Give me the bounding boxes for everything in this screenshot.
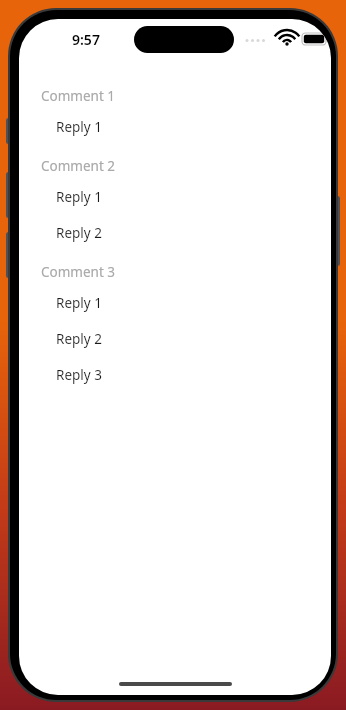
staticText: Reply 2 <box>56 330 102 348</box>
button[interactable]: Reply 1 <box>19 179 331 215</box>
staticText: Reply 1 <box>56 188 102 206</box>
button[interactable]: Comment 2 <box>19 153 331 179</box>
staticText: Comment 1 <box>41 87 116 105</box>
staticText: Reply 2 <box>56 224 102 242</box>
button[interactable]: Comment 3 <box>19 259 331 285</box>
button[interactable]: Reply 1 <box>19 285 331 321</box>
button[interactable]: Reply 1 <box>19 109 331 145</box>
button[interactable]: Comment 1 <box>19 83 331 109</box>
staticText: Reply 3 <box>56 366 102 384</box>
button[interactable]: Reply 2 <box>19 321 331 357</box>
staticText: Reply 1 <box>56 294 102 312</box>
staticText: Comment 3 <box>41 263 116 281</box>
staticText: Reply 1 <box>56 118 102 136</box>
button[interactable]: Reply 3 <box>19 357 331 393</box>
button[interactable]: Reply 2 <box>19 215 331 251</box>
staticText: 9:57 <box>72 30 100 49</box>
other: Home indicator <box>119 682 232 686</box>
staticText: Comment 2 <box>41 157 116 175</box>
